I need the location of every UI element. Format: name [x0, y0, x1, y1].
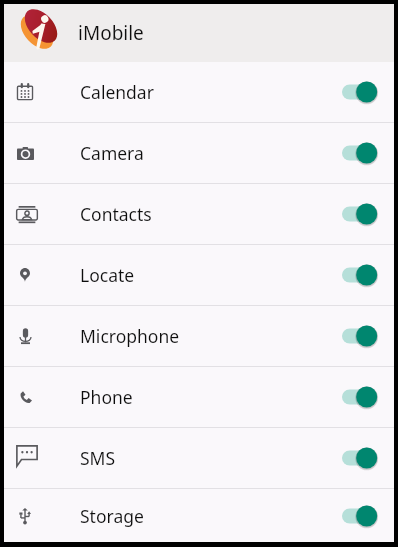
button[interactable]: Toggle Microphone	[342, 320, 390, 352]
button[interactable]: Toggle Locate	[342, 259, 390, 291]
staticText: Contacts	[80, 202, 152, 226]
staticText: Storage	[80, 504, 144, 528]
button[interactable]: Microphone	[4, 306, 394, 366]
button[interactable]: Toggle Phone	[342, 381, 390, 413]
staticText: iMobile	[78, 20, 144, 46]
button[interactable]: Toggle Contacts	[342, 198, 390, 230]
staticText: SMS	[80, 446, 116, 470]
button[interactable]: iMobile	[4, 4, 394, 62]
button[interactable]: Toggle Storage	[342, 500, 390, 532]
staticText: Camera	[80, 141, 144, 165]
button[interactable]: SMS	[4, 428, 394, 488]
button[interactable]: Contacts	[4, 184, 394, 244]
button[interactable]: Storage	[4, 489, 394, 542]
button[interactable]: Toggle SMS	[342, 442, 390, 474]
button[interactable]: Locate	[4, 245, 394, 305]
staticText: Calendar	[80, 80, 154, 104]
button[interactable]: Camera	[4, 123, 394, 183]
button[interactable]: Toggle Calendar	[342, 76, 390, 108]
staticText: Microphone	[80, 324, 180, 348]
button[interactable]: Calendar	[4, 62, 394, 122]
staticText: Locate	[80, 263, 135, 287]
button[interactable]: Phone	[4, 367, 394, 427]
staticText: Phone	[80, 385, 133, 409]
button[interactable]: Toggle Camera	[342, 137, 390, 169]
